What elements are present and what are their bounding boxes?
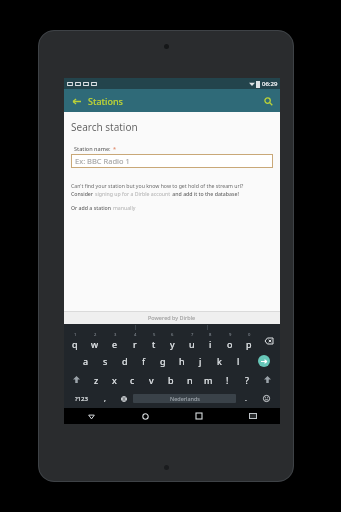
- staticText: *: [113, 145, 117, 152]
- staticText: l: [237, 355, 240, 367]
- staticText: Or add a station: [71, 204, 113, 211]
- staticText: v: [149, 374, 154, 386]
- staticText: n: [187, 374, 193, 386]
- button[interactable]: h: [172, 351, 191, 370]
- button[interactable]: b: [161, 370, 180, 389]
- button[interactable]: ,: [96, 391, 114, 406]
- staticText: t: [152, 338, 156, 350]
- staticText: manually: [113, 204, 136, 211]
- button[interactable]: n: [180, 370, 199, 389]
- staticText: .: [245, 394, 247, 404]
- button[interactable]: 1: [65, 331, 85, 351]
- staticText: x: [112, 374, 117, 386]
- staticText: u: [189, 338, 195, 350]
- button[interactable]: Search: [256, 94, 280, 108]
- button[interactable]: 2: [85, 331, 105, 351]
- staticText: Consider: [71, 190, 95, 197]
- staticText: 8: [209, 332, 212, 338]
- staticText: q: [72, 338, 78, 350]
- staticText: signing up for a Dirble account: [95, 190, 171, 197]
- staticText: 06:29: [262, 80, 278, 88]
- staticText: m: [204, 374, 213, 386]
- staticText: 3: [114, 332, 117, 338]
- staticText: Can't find your station but you know how…: [71, 182, 244, 189]
- button[interactable]: Emoji: [255, 391, 278, 406]
- button[interactable]: Backspace: [258, 331, 279, 351]
- staticText: k: [217, 355, 222, 367]
- staticText: Stations: [88, 95, 123, 107]
- staticText: b: [168, 374, 174, 386]
- button[interactable]: j: [191, 351, 210, 370]
- staticText: Powered by Dirble: [148, 314, 196, 321]
- staticText: Station name:: [74, 145, 111, 152]
- staticText: y: [170, 338, 175, 350]
- staticText: 1: [74, 332, 77, 338]
- button[interactable]: g: [153, 351, 172, 370]
- button[interactable]: 4: [125, 331, 144, 351]
- button[interactable]: manually: [113, 204, 136, 211]
- button[interactable]: ?: [237, 370, 256, 389]
- button[interactable]: x: [105, 370, 123, 389]
- button[interactable]: Recent apps: [172, 408, 226, 424]
- staticText: Search station: [71, 120, 138, 134]
- button[interactable]: m: [199, 370, 218, 389]
- button[interactable]: Change language: [114, 391, 133, 406]
- staticText: ,: [104, 394, 106, 404]
- button[interactable]: Ex: BBC Radio 1: [71, 154, 273, 168]
- staticText: d: [122, 355, 128, 367]
- staticText: and add it to the database!: [171, 190, 239, 197]
- button[interactable]: v: [142, 370, 161, 389]
- staticText: s: [103, 355, 108, 367]
- button[interactable]: c: [123, 370, 142, 389]
- staticText: 2: [94, 332, 97, 338]
- button[interactable]: Home: [118, 408, 172, 424]
- button[interactable]: 9: [220, 331, 239, 351]
- staticText: p: [246, 338, 252, 350]
- staticText: Nederlands: [170, 395, 200, 402]
- staticText: 7: [191, 332, 194, 338]
- staticText: 0: [248, 332, 251, 338]
- staticText: c: [130, 374, 135, 386]
- staticText: o: [227, 338, 233, 350]
- staticText: j: [199, 355, 202, 367]
- button[interactable]: l: [229, 351, 248, 370]
- staticText: 9: [229, 332, 232, 338]
- button[interactable]: Back: [64, 408, 118, 424]
- button[interactable]: 3: [105, 331, 125, 351]
- staticText: e: [112, 338, 118, 350]
- staticText: i: [209, 338, 212, 350]
- staticText: !: [226, 374, 229, 386]
- button[interactable]: Shift: [65, 370, 87, 389]
- button[interactable]: 6: [163, 331, 182, 351]
- button[interactable]: Enter: [248, 351, 279, 370]
- button[interactable]: z: [87, 370, 105, 389]
- button[interactable]: s: [96, 351, 115, 370]
- staticText: 6: [171, 332, 174, 338]
- button[interactable]: 0: [239, 331, 258, 351]
- button[interactable]: Shift: [256, 370, 279, 389]
- button[interactable]: Back: [64, 94, 88, 108]
- staticText: z: [94, 374, 99, 386]
- button[interactable]: 8: [201, 331, 220, 351]
- button[interactable]: k: [210, 351, 229, 370]
- staticText: Ex: BBC Radio 1: [75, 156, 130, 166]
- staticText: h: [179, 355, 185, 367]
- staticText: a: [83, 355, 89, 367]
- button[interactable]: Switch keyboard: [226, 408, 280, 424]
- button[interactable]: f: [134, 351, 153, 370]
- button[interactable]: .: [236, 391, 255, 406]
- button[interactable]: 5: [144, 331, 163, 351]
- staticText: g: [160, 355, 166, 367]
- staticText: 5: [153, 332, 156, 338]
- button[interactable]: ?123: [66, 391, 96, 406]
- button[interactable]: !: [218, 370, 237, 389]
- staticText: r: [133, 338, 137, 350]
- button[interactable]: Nederlands: [133, 394, 236, 403]
- button[interactable]: signing up for a Dirble account: [95, 190, 171, 197]
- button[interactable]: d: [115, 351, 134, 370]
- button[interactable]: a: [76, 351, 96, 370]
- button[interactable]: 7: [182, 331, 201, 351]
- staticText: 4: [134, 332, 137, 338]
- staticText: ?123: [75, 395, 88, 403]
- staticText: w: [91, 338, 99, 350]
